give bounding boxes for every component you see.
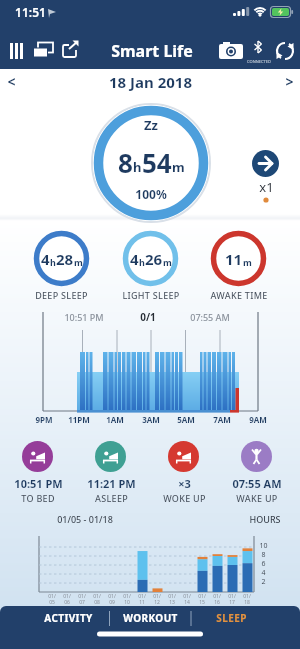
staticText: 14 <box>184 599 190 605</box>
staticText: 07 <box>79 599 85 605</box>
staticText: 10 <box>259 541 268 550</box>
staticText: x1 <box>259 178 274 194</box>
staticText: 17 <box>229 599 235 605</box>
staticText: 4 <box>130 249 139 269</box>
staticText: Smart Life <box>111 40 193 62</box>
staticText: ACTIVITY <box>44 611 93 625</box>
button[interactable] <box>168 441 199 472</box>
staticText: 01/ <box>48 593 56 599</box>
staticText: 26 <box>145 249 163 269</box>
staticText: m <box>243 256 252 268</box>
staticText: AWAKE TIME <box>210 289 268 301</box>
staticText: < <box>7 72 16 91</box>
button[interactable] <box>272 38 298 64</box>
button[interactable] <box>241 441 272 472</box>
button[interactable] <box>215 38 247 64</box>
staticText: 6 <box>261 559 266 568</box>
staticText: 2 <box>261 577 266 586</box>
staticText: m <box>74 256 83 268</box>
staticText: 01/ <box>183 593 191 599</box>
staticText: 16 <box>214 599 220 605</box>
staticText: 11 <box>225 249 243 269</box>
staticText: 100% <box>135 186 167 202</box>
button[interactable]: < <box>2 71 20 91</box>
staticText: 01/ <box>78 593 86 599</box>
staticText: DEEP SLEEP <box>35 289 88 301</box>
staticText: TO BED <box>21 492 55 504</box>
staticText: 9AM <box>249 414 267 425</box>
staticText: CONNECTED <box>247 59 271 64</box>
staticText: ×3 <box>178 476 191 490</box>
staticText: 4 <box>261 568 266 577</box>
staticText: 01/ <box>243 593 251 599</box>
staticText: HOURS <box>249 513 281 525</box>
staticText: 01/ <box>198 593 206 599</box>
button[interactable] <box>22 441 53 472</box>
staticText: 4 <box>41 249 50 269</box>
staticText: 01/ <box>228 593 236 599</box>
staticText: SLEEP <box>216 611 247 625</box>
staticText: 01/ <box>153 593 161 599</box>
staticText: Zz <box>144 116 158 132</box>
staticText: 12 <box>154 599 160 605</box>
button[interactable] <box>60 38 84 64</box>
staticText: m <box>163 256 172 268</box>
staticText: WOKE UP <box>163 492 206 504</box>
staticText: 01/ <box>138 593 146 599</box>
staticText: 01/ <box>93 593 101 599</box>
staticText: 07:55 AM <box>232 476 282 490</box>
staticText: 01/05 - 01/18 <box>57 513 113 525</box>
staticText: 11PM <box>68 414 90 425</box>
staticText: 9PM <box>35 414 53 425</box>
button[interactable] <box>31 38 57 64</box>
staticText: 18 Jan 2018 <box>109 72 192 92</box>
staticText: 08 <box>94 599 100 605</box>
button[interactable] <box>250 38 268 64</box>
staticText: 01/ <box>63 593 71 599</box>
staticText: h <box>139 256 145 268</box>
button[interactable]: SLEEP <box>196 608 267 628</box>
staticText: WORKOUT <box>123 611 178 625</box>
staticText: ASLEEP <box>95 492 128 504</box>
staticText: 06 <box>64 599 70 605</box>
staticText: 01/ <box>123 593 131 599</box>
staticText: 54 <box>142 145 172 180</box>
button[interactable]: > <box>280 71 298 91</box>
staticText: 1AM <box>106 414 124 425</box>
staticText: WAKE UP <box>236 492 278 504</box>
staticText: 05 <box>49 599 55 605</box>
staticText: 28 <box>56 249 74 269</box>
staticText: 01/ <box>108 593 116 599</box>
staticText: 01/ <box>213 593 221 599</box>
staticText: h <box>133 158 142 176</box>
staticText: 0/1 <box>140 310 156 324</box>
staticText: 09 <box>109 599 115 605</box>
staticText: 11:51 <box>15 4 46 20</box>
staticText: 5AM <box>177 414 195 425</box>
button[interactable]: ACTIVITY <box>33 608 104 628</box>
staticText: h <box>50 256 56 268</box>
staticText: 10:51 PM <box>14 476 63 490</box>
staticText: m <box>172 158 185 176</box>
button[interactable]: WORKOUT <box>114 608 186 628</box>
staticText: > <box>285 72 294 91</box>
staticText: 8 <box>261 550 266 559</box>
staticText: 10 <box>124 599 130 605</box>
button[interactable] <box>95 441 126 472</box>
staticText: 18 <box>244 599 250 605</box>
staticText: 7AM <box>213 414 231 425</box>
staticText: LIGHT SLEEP <box>122 289 180 301</box>
button[interactable] <box>6 38 30 64</box>
staticText: 11:21 PM <box>87 476 136 490</box>
staticText: 01/ <box>168 593 176 599</box>
staticText: 10:51 PM <box>64 311 104 323</box>
staticText: 13 <box>169 599 175 605</box>
staticText: 3AM <box>142 414 160 425</box>
button[interactable] <box>252 150 279 177</box>
staticText: 15 <box>199 599 205 605</box>
staticText: 11 <box>139 599 145 605</box>
staticText: 07:55 AM <box>190 311 230 323</box>
staticText: 8 <box>118 145 133 180</box>
